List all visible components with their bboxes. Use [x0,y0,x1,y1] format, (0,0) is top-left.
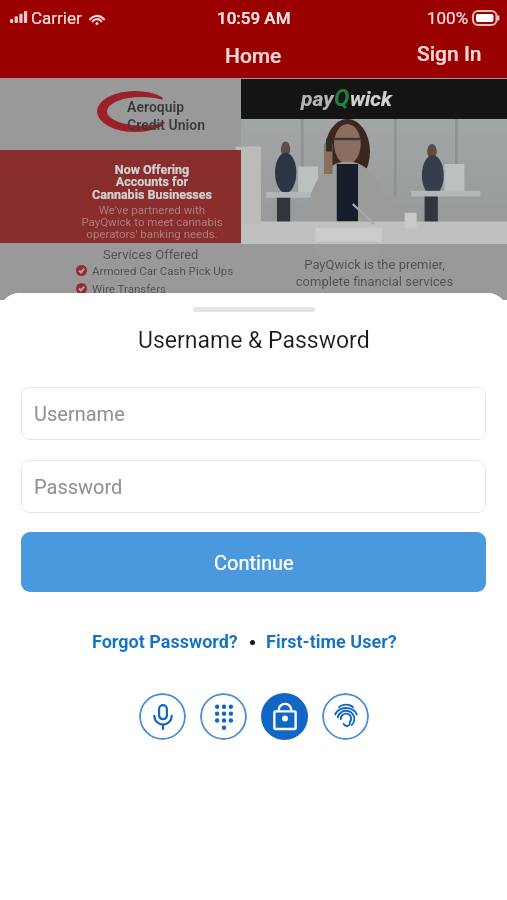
button[interactable]: Home [0,35,507,78]
staticText: We've partnered with PayQwick to meet ca… [81,203,223,241]
staticText: Username & Password [138,327,370,354]
staticText: Username [34,402,125,425]
staticText: PayQwick is the premier, complete financ… [280,257,469,307]
button[interactable]: Fingerprint login [322,693,369,740]
staticText: Carrier [31,8,82,28]
staticText: Armored Car Cash Pick Ups [92,264,234,277]
staticText: First-time User? [266,631,397,652]
staticText: Services Offered [103,247,199,262]
staticText: Now Offering Accounts for Cannabis Busin… [92,162,212,202]
staticText: Home [225,44,282,69]
button[interactable]: First-time User? [265,626,398,657]
button[interactable]: Keypad login [200,693,247,740]
button[interactable]: Password [21,460,486,513]
staticText: Continue [214,551,294,574]
staticText: 100% [427,8,469,28]
staticText: wick [350,87,392,112]
staticText: Sign In [417,42,482,67]
staticText: Wire Transfers [92,282,166,295]
button[interactable]: Password login [261,693,308,740]
button[interactable]: Voice login [139,693,186,740]
staticText: Forgot Password? [92,631,238,652]
button[interactable]: Continue [21,532,486,592]
button[interactable]: Sign In [391,36,507,77]
staticText: Q [334,85,350,112]
staticText: pay [301,87,334,112]
staticText: Password [34,475,123,498]
button[interactable]: Forgot Password? [91,626,239,657]
staticText: Aeroquip [127,99,185,115]
staticText: 10:59 AM [217,8,291,28]
staticText: Credit Union [127,117,206,133]
button[interactable]: Username [21,387,486,440]
